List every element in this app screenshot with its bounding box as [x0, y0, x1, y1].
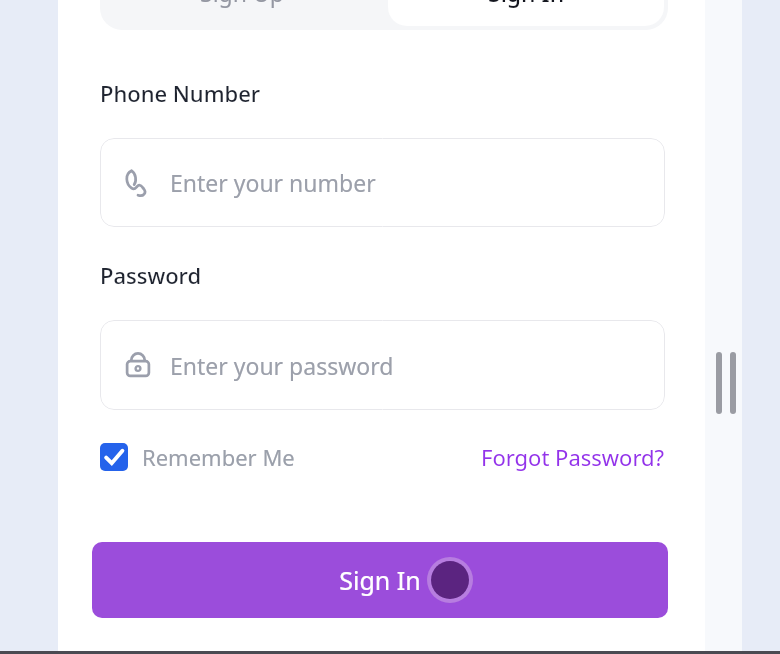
staticText: Enter your password	[170, 350, 394, 381]
button[interactable]: Enter your number	[100, 138, 665, 227]
staticText: Phone Number	[100, 78, 261, 108]
button[interactable]: Enter your password	[100, 320, 665, 410]
button[interactable]: Forgot Password?	[481, 442, 665, 472]
button[interactable]: Sign In	[388, 0, 664, 26]
staticText: Remember Me	[142, 442, 295, 472]
staticText: Sign Up	[200, 0, 284, 8]
button[interactable]: Remember Me	[100, 442, 295, 472]
staticText: Sign In	[488, 0, 565, 8]
button[interactable]: Sign Up	[100, 0, 384, 30]
staticText: Password	[100, 260, 202, 290]
staticText: Sign In	[339, 563, 421, 597]
staticText: Enter your number	[170, 167, 376, 198]
staticText: Forgot Password?	[481, 442, 665, 472]
button[interactable]: Sign In	[92, 542, 668, 618]
